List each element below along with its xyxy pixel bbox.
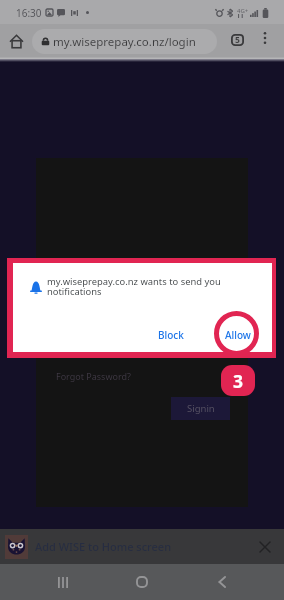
button[interactable]: Back <box>202 564 242 600</box>
button[interactable]: Add WISE to Home screen <box>0 529 284 564</box>
button[interactable]: my.wiseprepay.co.nz/login <box>32 29 217 54</box>
button[interactable]: More options <box>256 29 274 47</box>
staticText: Allow <box>225 328 251 342</box>
button[interactable]: Home <box>6 31 27 52</box>
staticText: Add WISE to Home screen <box>35 539 172 554</box>
button[interactable]: Allow <box>217 324 259 346</box>
staticText: Block <box>158 328 184 342</box>
staticText: Signin <box>187 402 215 415</box>
button[interactable]: Signin <box>171 397 230 420</box>
button[interactable]: Tabs <box>228 31 246 49</box>
staticText: 3 <box>233 369 244 393</box>
staticText: 16:30 <box>16 6 42 20</box>
staticText: my.wiseprepay.co.nz wants to send you no… <box>47 275 221 298</box>
button[interactable]: Close <box>250 532 280 562</box>
staticText: 4G+ <box>237 7 249 15</box>
button[interactable]: Home <box>122 564 162 600</box>
staticText: 5 <box>235 34 240 46</box>
button[interactable]: Block <box>150 324 192 346</box>
staticText: Forgot Password? <box>56 370 131 382</box>
staticText: my.wiseprepay.co.nz/login <box>53 34 196 50</box>
button[interactable]: Recents <box>43 564 83 600</box>
